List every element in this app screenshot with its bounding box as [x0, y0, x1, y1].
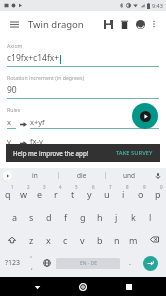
- button[interactable]: EN · DE: [56, 258, 120, 269]
- button[interactable]: r: [48, 182, 64, 205]
- staticText: e: [37, 188, 43, 200]
- staticText: s: [29, 211, 34, 223]
- button[interactable]: t: [64, 182, 81, 205]
- staticText: 2: [27, 184, 30, 190]
- button[interactable]: j: [108, 205, 125, 228]
- staticText: y: [7, 136, 11, 146]
- staticText: g: [80, 211, 86, 223]
- staticText: b: [97, 234, 103, 246]
- staticText: TAKE SURVEY: [116, 149, 153, 157]
- staticText: 90: [7, 84, 17, 96]
- button[interactable]: m: [125, 228, 142, 251]
- staticText: u: [104, 188, 110, 200]
- staticText: .: [129, 258, 131, 268]
- staticText: a: [12, 211, 18, 223]
- staticText: d: [46, 211, 52, 223]
- staticText: °: [30, 255, 33, 262]
- staticText: x+yf: [30, 117, 45, 127]
- button[interactable]: c: [57, 228, 74, 251]
- button[interactable]: s: [23, 205, 40, 228]
- staticText: 9: [143, 184, 146, 190]
- button[interactable]: TAKE SURVEY: [116, 149, 153, 157]
- staticText: 8: [126, 184, 129, 190]
- button[interactable]: z: [23, 228, 40, 251]
- staticText: 9:43: [152, 2, 163, 9]
- staticText: ,: [31, 262, 33, 272]
- button[interactable]: Back: [28, 278, 46, 296]
- button[interactable]: h: [91, 205, 108, 228]
- staticText: EN · DE: [80, 260, 97, 267]
- staticText: x: [7, 117, 11, 127]
- button[interactable]: Language: [132, 16, 148, 32]
- staticText: 4: [59, 184, 62, 190]
- button[interactable]: .: [122, 251, 137, 275]
- button[interactable]: v: [74, 228, 91, 251]
- button[interactable]: Help me improve the app!: [6, 144, 160, 162]
- staticText: z: [29, 234, 34, 246]
- staticText: Twin dragon: [28, 18, 84, 31]
- button[interactable]: Shift: [0, 228, 23, 251]
- button[interactable]: Voice input: [152, 170, 163, 181]
- button[interactable]: Run: [132, 103, 158, 129]
- button[interactable]: q: [0, 182, 16, 205]
- staticText: 7: [109, 184, 112, 190]
- staticText: Rules: [7, 106, 21, 113]
- button[interactable]: w: [16, 182, 32, 205]
- staticText: Rotation increment (in degrees): [7, 74, 84, 81]
- button[interactable]: k: [125, 205, 142, 228]
- staticText: die: [77, 171, 87, 180]
- staticText: k: [131, 211, 136, 223]
- staticText: Help me improve the app!: [13, 149, 89, 157]
- button[interactable]: Delete: [116, 16, 132, 32]
- staticText: p: [155, 188, 161, 200]
- button[interactable]: die: [59, 168, 105, 182]
- staticText: w: [20, 188, 28, 200]
- staticText: c: [63, 234, 68, 246]
- button[interactable]: Backspace: [142, 228, 166, 251]
- staticText: Axiom: [7, 42, 23, 49]
- staticText: 6: [92, 184, 95, 190]
- button[interactable]: a: [7, 205, 23, 228]
- button[interactable]: o: [132, 182, 149, 205]
- button[interactable]: Enter: [137, 251, 164, 275]
- button[interactable]: in: [12, 168, 58, 182]
- staticText: in: [32, 171, 38, 180]
- staticText: h: [97, 211, 103, 223]
- staticText: l: [149, 211, 152, 223]
- button[interactable]: f: [57, 205, 74, 228]
- staticText: y: [87, 188, 92, 200]
- button[interactable]: n: [108, 228, 125, 251]
- button[interactable]: g: [74, 205, 91, 228]
- button[interactable]: ?123: [2, 251, 24, 275]
- staticText: x: [46, 234, 51, 246]
- button[interactable]: Save: [100, 16, 116, 32]
- button[interactable]: °: [24, 251, 39, 275]
- staticText: 5: [75, 184, 78, 190]
- button[interactable]: Expand: [3, 171, 12, 180]
- staticText: i: [122, 188, 125, 200]
- button[interactable]: x: [40, 228, 57, 251]
- button[interactable]: p: [149, 182, 166, 205]
- button[interactable]: i: [115, 182, 132, 205]
- button[interactable]: Home: [74, 278, 92, 296]
- staticText: 1: [11, 184, 14, 190]
- staticText: o: [138, 188, 144, 200]
- button[interactable]: More options: [148, 18, 160, 30]
- button[interactable]: und: [106, 168, 152, 182]
- staticText: n: [114, 234, 120, 246]
- button[interactable]: Recent apps: [120, 278, 138, 296]
- button[interactable]: y: [81, 182, 98, 205]
- button[interactable]: d: [40, 205, 57, 228]
- button[interactable]: l: [142, 205, 159, 228]
- button[interactable]: Switch language: [39, 251, 54, 275]
- staticText: t: [71, 188, 75, 200]
- staticText: m: [129, 234, 138, 246]
- button[interactable]: b: [91, 228, 108, 251]
- staticText: f: [64, 211, 68, 223]
- staticText: und: [123, 171, 136, 180]
- button[interactable]: e: [32, 182, 48, 205]
- button[interactable]: Menu: [6, 16, 22, 32]
- button[interactable]: u: [98, 182, 115, 205]
- staticText: ?123: [5, 258, 21, 268]
- staticText: q: [5, 188, 11, 200]
